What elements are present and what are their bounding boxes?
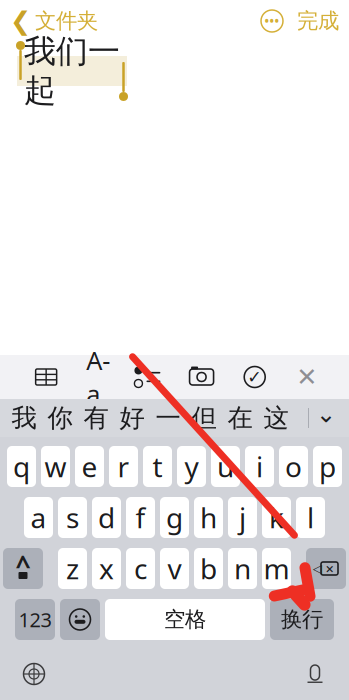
staticText: r	[117, 448, 129, 485]
staticText: ◁	[313, 562, 322, 575]
staticText: 完成	[297, 8, 339, 34]
staticText: 好	[119, 402, 144, 433]
button[interactable]: Switch keyboard	[14, 654, 54, 694]
staticText: p	[319, 448, 336, 485]
staticText: 文件夹	[35, 8, 98, 34]
button[interactable]: x	[92, 548, 121, 589]
staticText: 你	[47, 402, 72, 433]
button[interactable]: a	[24, 497, 53, 538]
button[interactable]: 好	[114, 400, 150, 436]
button[interactable]: Shift	[3, 548, 43, 589]
button[interactable]: c	[126, 548, 155, 589]
button[interactable]: u	[211, 446, 240, 487]
staticText: 换行	[281, 606, 323, 633]
button[interactable]: 有	[78, 400, 114, 436]
button[interactable]: h	[194, 497, 223, 538]
button[interactable]: v	[160, 548, 189, 589]
button[interactable]: m	[262, 548, 291, 589]
staticText: 123	[18, 606, 51, 633]
staticText: i	[256, 448, 263, 485]
staticText: z	[66, 550, 79, 587]
staticText: v	[167, 550, 181, 587]
button[interactable]: n	[228, 548, 257, 589]
staticText: 空格	[164, 606, 206, 633]
button[interactable]: Table	[24, 367, 68, 387]
button[interactable]: 你	[42, 400, 78, 436]
staticText: ×	[325, 559, 333, 578]
button[interactable]: 我	[6, 400, 42, 436]
staticText: ❮	[10, 7, 31, 35]
staticText: ^	[15, 547, 30, 583]
button[interactable]: s	[58, 497, 87, 538]
button[interactable]: ❮	[0, 1, 98, 41]
button[interactable]: l	[296, 497, 325, 538]
staticText: ⌄	[316, 400, 336, 428]
staticText: a	[30, 499, 46, 536]
staticText: q	[13, 448, 30, 485]
button[interactable]: f	[126, 497, 155, 538]
button[interactable]: q	[7, 446, 36, 487]
staticText: 但	[191, 402, 216, 433]
staticText: •••	[264, 13, 279, 29]
button[interactable]: Dictate	[295, 654, 335, 694]
button[interactable]: Emoji	[60, 599, 100, 640]
button[interactable]: 换行	[270, 599, 334, 640]
staticText: l	[307, 499, 314, 536]
staticText: u	[217, 448, 234, 485]
button[interactable]: 123	[15, 599, 55, 640]
button[interactable]: o	[279, 446, 308, 487]
button[interactable]: r	[109, 446, 138, 487]
staticText: 一	[155, 402, 180, 433]
staticText: s	[66, 499, 79, 536]
button[interactable]: Close	[289, 366, 325, 388]
button[interactable]: k	[262, 497, 291, 538]
staticText: f	[135, 499, 145, 536]
staticText: j	[239, 499, 246, 536]
button[interactable]: g	[160, 497, 189, 538]
button[interactable]: More	[257, 6, 287, 36]
staticText: 这	[263, 402, 288, 433]
button[interactable]: w	[41, 446, 70, 487]
button[interactable]: 空格	[105, 599, 265, 640]
button[interactable]: t	[143, 446, 172, 487]
staticText: o	[285, 448, 302, 485]
staticText: w	[44, 448, 66, 485]
button[interactable]: Checklist	[128, 367, 166, 387]
button[interactable]: 但	[186, 400, 222, 436]
staticText: 我们一起	[24, 32, 120, 110]
button[interactable]: z	[58, 548, 87, 589]
staticText: Aa	[86, 343, 110, 411]
button[interactable]: p	[313, 446, 342, 487]
staticText: 我	[11, 402, 36, 433]
staticText: h	[200, 499, 217, 536]
button[interactable]: i	[245, 446, 274, 487]
staticText: ✓	[247, 367, 262, 387]
button[interactable]: 这	[258, 400, 294, 436]
button[interactable]: d	[92, 497, 121, 538]
staticText: d	[98, 499, 115, 536]
staticText: c	[134, 550, 147, 587]
staticText: ✕	[296, 363, 317, 391]
staticText: g	[166, 499, 183, 536]
staticText: t	[152, 448, 162, 485]
staticText: y	[184, 448, 198, 485]
button[interactable]: b	[194, 548, 223, 589]
button[interactable]: y	[177, 446, 206, 487]
staticText: x	[99, 550, 114, 587]
staticText: 有	[83, 402, 108, 433]
staticText: e	[81, 448, 97, 485]
button[interactable]: e	[75, 446, 104, 487]
staticText: 在	[227, 402, 252, 433]
staticText: k	[269, 499, 284, 536]
button[interactable]: 一	[150, 400, 186, 436]
button[interactable]: Markup	[237, 366, 273, 388]
staticText: n	[234, 550, 251, 587]
button[interactable]: Delete	[306, 548, 346, 589]
button[interactable]: Expand candidates	[309, 400, 343, 436]
button[interactable]: j	[228, 497, 257, 538]
button[interactable]: Camera	[183, 367, 221, 387]
button[interactable]: Text format	[84, 366, 112, 388]
button[interactable]: 在	[222, 400, 258, 436]
staticText: m	[263, 550, 289, 587]
button[interactable]: 完成	[287, 2, 349, 40]
